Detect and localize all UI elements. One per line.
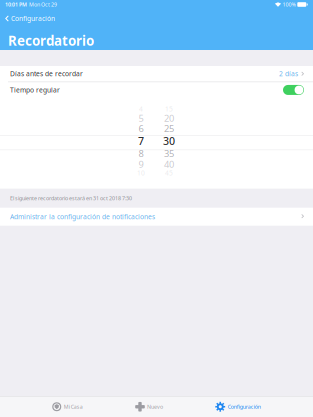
staticText: Configuración [228, 403, 261, 410]
staticText: 4 [139, 105, 143, 113]
staticText: 40 [164, 158, 174, 170]
staticText: 9 [138, 158, 143, 170]
staticText: Nuevo [147, 403, 163, 410]
staticText: 8 [138, 147, 143, 160]
staticText: 7 [138, 134, 144, 148]
staticText: 20 [164, 112, 174, 124]
staticText: Mon Oct 29 [27, 1, 57, 8]
staticText: 2 días [279, 69, 298, 78]
button[interactable]: Tiempo regular [0, 82, 313, 98]
staticText: El siguiente recordatorio estará en 31 o… [10, 195, 132, 202]
staticText: Administrar la configuración de notifica… [10, 212, 155, 221]
staticText: 100% [281, 1, 295, 8]
staticText: 35 [164, 147, 174, 160]
staticText: 5 [138, 112, 143, 124]
staticText: 10 [137, 168, 145, 177]
staticText: 25 [164, 122, 174, 135]
staticText: 30 [163, 134, 175, 148]
button[interactable]: Administrar la configuración de notifica… [0, 208, 313, 226]
staticText: 6 [138, 122, 143, 135]
staticText: 45 [165, 168, 173, 177]
staticText: Configuración [11, 14, 55, 23]
button[interactable]: Mi Casa [52, 396, 83, 417]
staticText: Tiempo regular [10, 85, 60, 94]
staticText: 15 [165, 105, 173, 113]
staticText: Días antes de recordar [10, 69, 83, 78]
button[interactable]: Configuración [0, 9, 313, 28]
button[interactable]: Configuración [215, 396, 261, 417]
button[interactable]: Nuevo [135, 396, 163, 417]
staticText: Mi Casa [64, 403, 83, 410]
staticText: Recordatorio [8, 32, 94, 49]
staticText: 10:01 PM [5, 1, 27, 8]
button[interactable]: Días antes de recordar [0, 66, 313, 81]
